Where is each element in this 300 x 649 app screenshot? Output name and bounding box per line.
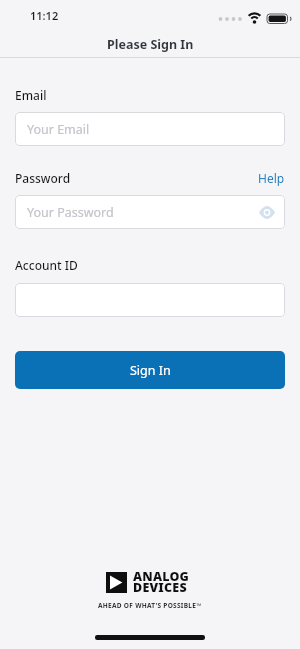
staticText: DEVICES [133, 579, 187, 596]
button[interactable]: Your Email [15, 112, 285, 146]
staticText: Your Password [27, 204, 114, 221]
button[interactable]: Your Password [15, 195, 285, 229]
staticText: 11:12 [30, 8, 59, 23]
staticText: Email [15, 87, 47, 103]
staticText: Please Sign In [107, 36, 194, 53]
button[interactable]: Sign In [15, 351, 285, 389]
button[interactable]: Help [258, 170, 285, 186]
staticText: Password [15, 170, 71, 186]
staticText: Account ID [15, 257, 78, 273]
staticText: ANALOG [133, 568, 190, 585]
staticText: AHEAD OF WHAT'S POSSIBLE™ [98, 601, 202, 610]
staticText: Your Email [27, 121, 90, 138]
button[interactable] [15, 283, 285, 317]
staticText: Sign In [130, 362, 171, 379]
